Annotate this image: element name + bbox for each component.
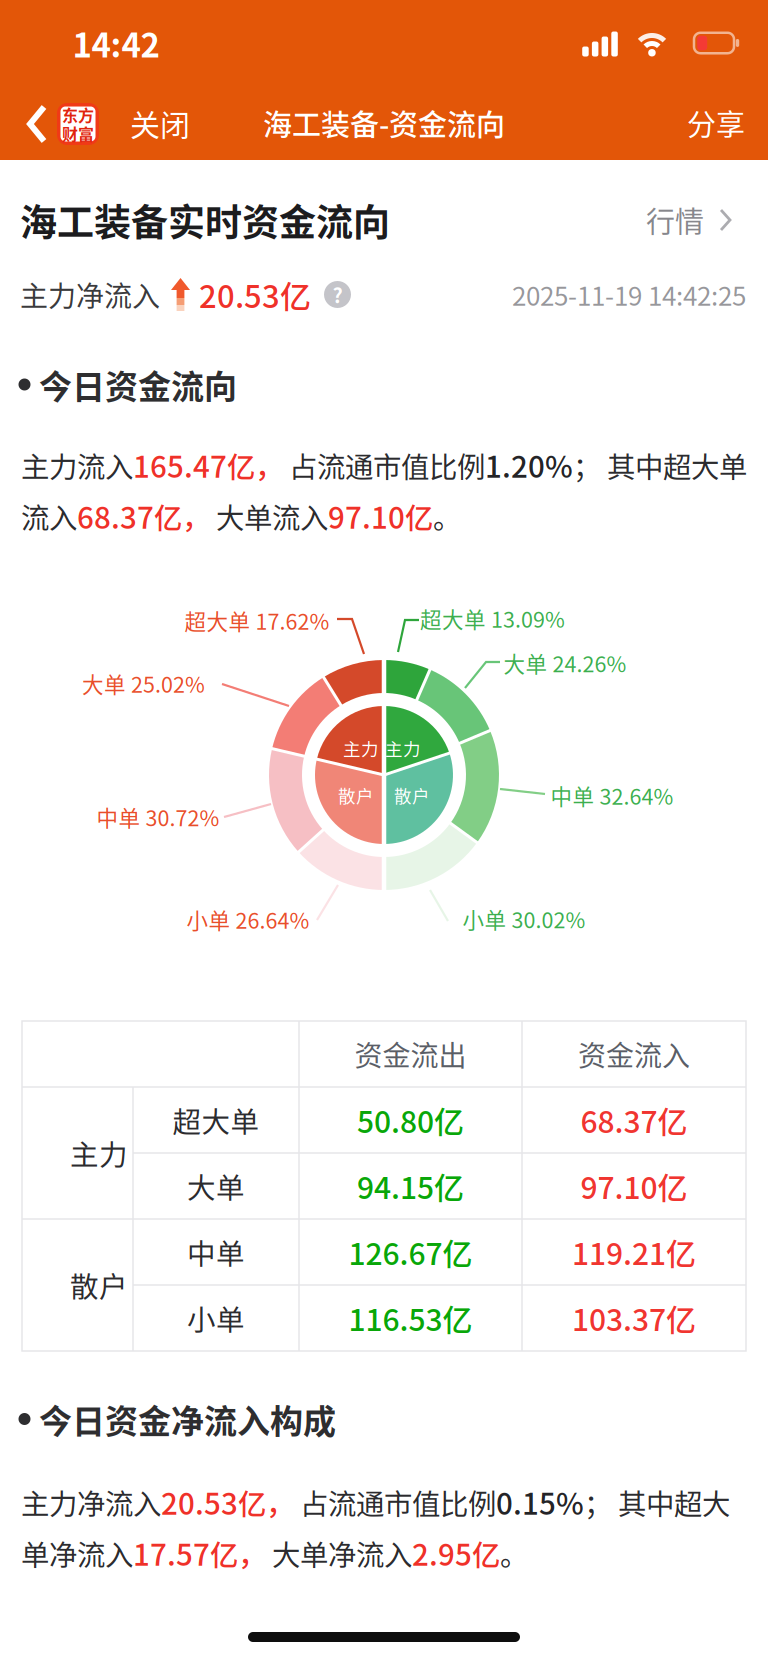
staticText: 亿， [154,496,210,537]
staticText: 2025-11-19 14:42:25 [512,276,746,313]
staticText: 68.37亿 [580,1098,687,1142]
staticText: 94.15亿 [357,1164,464,1208]
staticText: 今日资金净流入构成 [39,1395,336,1443]
button[interactable]: 关闭 [130,101,190,145]
staticText: 主力净流入 [20,274,160,315]
staticText: 资金流入 [578,1034,690,1074]
button[interactable]: 分享 [687,102,745,144]
staticText: 亿， [227,445,283,486]
staticText: 主力 [385,735,421,761]
staticText: 17.57 [133,1532,210,1574]
staticText: 今日资金流向 [39,361,237,408]
staticText: 主力流入 [21,445,133,486]
staticText: 103.37亿 [572,1296,696,1340]
staticText: 中单 [187,1231,245,1273]
staticText: ； 其中超大单 [573,445,747,486]
staticText: 2.95 [412,1532,472,1574]
button[interactable]: 返回 [27,105,47,143]
staticText: 。 [500,1533,528,1574]
staticText: 126.67亿 [348,1230,472,1274]
staticText: ? [332,280,342,309]
staticText: 中单 30.72% [96,801,219,832]
staticText: 97.10 [328,495,405,537]
staticText: 大单 25.02% [82,668,205,699]
staticText: 主力 [70,1132,128,1174]
staticText: 主力 [343,735,379,761]
staticText: 散户 [70,1264,128,1306]
staticText: 占流通市值比例 [283,445,485,486]
staticText: 亿， [238,1482,294,1523]
staticText: 亿 [405,496,433,537]
staticText: 0.15% [496,1481,584,1523]
staticText: 海工装备实时资金流向 [20,193,390,247]
staticText: 超大单 [172,1099,259,1141]
staticText: 大单流入 [210,496,328,537]
staticText: 财富 [62,122,94,145]
staticText: 行情 [646,199,704,241]
staticText: 散户 [394,782,430,808]
staticText: 20.53亿 [199,272,311,317]
staticText: 东方 [62,103,94,126]
staticText: 亿， [210,1533,266,1574]
staticText: 超大单 13.09% [420,603,565,634]
staticText: 小单 26.64% [186,904,309,935]
staticText: 资金流出 [354,1034,466,1074]
staticText: 119.21亿 [572,1230,696,1274]
staticText: ； 其中超大 [584,1482,730,1523]
staticText: 分享 [687,102,745,144]
staticText: 单净流入 [21,1533,133,1574]
staticText: 116.53亿 [348,1296,472,1340]
staticText: 主力净流入 [21,1482,161,1523]
staticText: 97.10亿 [580,1164,687,1208]
staticText: 超大单 17.62% [184,605,329,636]
button[interactable]: 说明 [324,281,351,308]
staticText: 68.37 [77,495,154,537]
staticText: 大单 24.26% [503,647,626,678]
staticText: 14:42 [72,19,159,67]
staticText: 20.53 [161,1481,238,1523]
staticText: 流入 [21,496,77,537]
staticText: 中单 32.64% [550,780,673,811]
staticText: 1.20% [485,444,573,486]
staticText: 亿 [472,1533,500,1574]
staticText: 小单 30.02% [462,903,585,934]
staticText: 大单净流入 [266,1533,412,1574]
staticText: 小单 [187,1297,245,1339]
staticText: 占流通市值比例 [294,1482,496,1523]
staticText: 海工装备-资金流向 [263,102,505,144]
staticText: 散户 [338,782,374,808]
staticText: 大单 [187,1165,245,1207]
staticText: 165.47 [133,444,227,486]
staticText: 。 [433,496,461,537]
staticText: 关闭 [130,101,190,145]
button[interactable]: 行情 [646,199,732,241]
staticText: 50.80亿 [357,1098,464,1142]
button[interactable]: 东方财富 [57,103,99,145]
